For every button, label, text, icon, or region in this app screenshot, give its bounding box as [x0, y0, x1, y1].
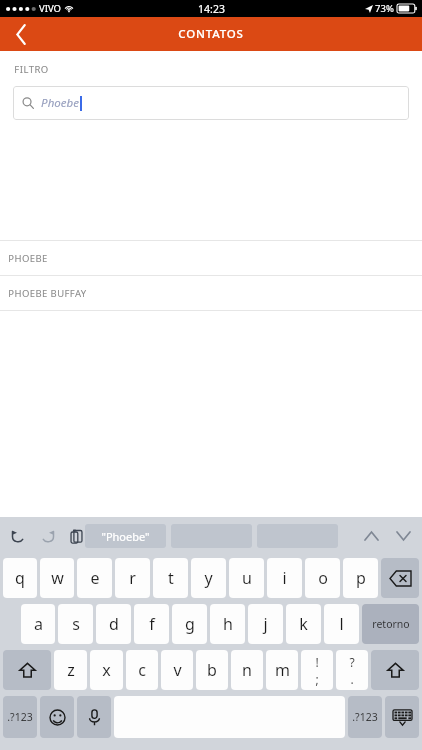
staticText: retorno	[372, 617, 410, 631]
staticText: c	[138, 659, 146, 681]
button[interactable]: "Phoebe"	[85, 524, 166, 548]
button[interactable]: j	[248, 604, 283, 644]
button[interactable]: Emoji	[40, 696, 74, 738]
staticText: PHOEBE	[8, 252, 48, 265]
button[interactable]: l	[324, 604, 359, 644]
button[interactable]: x	[90, 650, 123, 690]
button[interactable]: o	[305, 558, 340, 598]
button[interactable]: v	[161, 650, 193, 690]
button[interactable]: r	[115, 558, 150, 598]
button[interactable]: b	[196, 650, 228, 690]
staticText: CONTATOS	[178, 26, 244, 42]
staticText: y	[204, 567, 213, 589]
staticText: 14:23	[198, 2, 225, 16]
button[interactable]: Desfazer	[8, 526, 28, 546]
staticText: u	[242, 567, 252, 589]
button[interactable]: e	[77, 558, 112, 598]
button[interactable]: w	[40, 558, 74, 598]
staticText: w	[51, 567, 64, 589]
staticText: k	[299, 613, 308, 635]
staticText: r	[129, 567, 136, 589]
button[interactable]: f	[134, 604, 169, 644]
staticText: z	[67, 659, 75, 681]
staticText: i	[282, 567, 287, 589]
button[interactable]: Voltar	[0, 17, 42, 51]
button[interactable]: retorno	[362, 604, 419, 644]
staticText: Phoebe	[41, 95, 79, 111]
button[interactable]: Ocultar teclado	[385, 696, 419, 738]
button[interactable]: a	[21, 604, 55, 644]
button[interactable]: PHOEBE	[0, 241, 422, 275]
button[interactable]: m	[266, 650, 298, 690]
button[interactable]: i	[267, 558, 302, 598]
staticText: .?123	[352, 710, 378, 724]
button[interactable]: Maiúsculas	[3, 650, 51, 690]
staticText: m	[275, 659, 290, 681]
button[interactable]: g	[172, 604, 207, 644]
button[interactable]: d	[96, 604, 131, 644]
button[interactable]: Apagar	[381, 558, 419, 598]
staticText: v	[173, 659, 182, 681]
button[interactable]: c	[126, 650, 158, 690]
button[interactable]: Anterior	[361, 526, 381, 546]
staticText: d	[109, 613, 119, 635]
button[interactable]: z	[54, 650, 87, 690]
staticText: ;	[315, 671, 319, 687]
button[interactable]: Refazer	[37, 526, 57, 546]
button[interactable]: s	[58, 604, 93, 644]
staticText: .	[350, 671, 354, 687]
button[interactable]: !	[301, 650, 333, 690]
staticText: FILTRO	[14, 63, 49, 76]
button[interactable]: .?123	[348, 696, 382, 738]
staticText: t	[168, 567, 174, 589]
staticText: "Phoebe"	[101, 529, 150, 544]
staticText: e	[90, 567, 100, 589]
button[interactable]: Phoebe	[13, 86, 409, 120]
staticText: 73%	[375, 2, 394, 15]
staticText: x	[102, 659, 111, 681]
staticText: n	[242, 659, 252, 681]
staticText: .?123	[7, 710, 33, 724]
button[interactable]: n	[231, 650, 263, 690]
button[interactable]: Maiúsculas	[371, 650, 419, 690]
button[interactable]: PHOEBE BUFFAY	[0, 276, 422, 310]
staticText: b	[207, 659, 217, 681]
button[interactable]: Colar	[66, 526, 86, 546]
staticText: j	[263, 613, 268, 635]
staticText: f	[149, 613, 155, 635]
button[interactable]: p	[343, 558, 378, 598]
staticText: VIVO	[39, 2, 61, 15]
button[interactable]: ?	[336, 650, 368, 690]
staticText: p	[356, 567, 366, 589]
button[interactable]: Próximo	[393, 526, 413, 546]
button[interactable]: .?123	[3, 696, 37, 738]
button[interactable]: h	[210, 604, 245, 644]
staticText: o	[318, 567, 328, 589]
staticText: s	[72, 613, 80, 635]
button[interactable]: u	[229, 558, 264, 598]
button[interactable]: q	[3, 558, 37, 598]
staticText: l	[339, 613, 344, 635]
staticText: !	[315, 654, 319, 670]
button[interactable]: t	[153, 558, 188, 598]
button[interactable]: y	[191, 558, 226, 598]
staticText: a	[34, 613, 43, 635]
staticText: h	[223, 613, 233, 635]
staticText: PHOEBE BUFFAY	[8, 287, 87, 300]
staticText: q	[15, 567, 25, 589]
staticText: ?	[349, 654, 355, 670]
button[interactable]: Ditado	[77, 696, 111, 738]
staticText: g	[185, 613, 195, 635]
button[interactable]: k	[286, 604, 321, 644]
